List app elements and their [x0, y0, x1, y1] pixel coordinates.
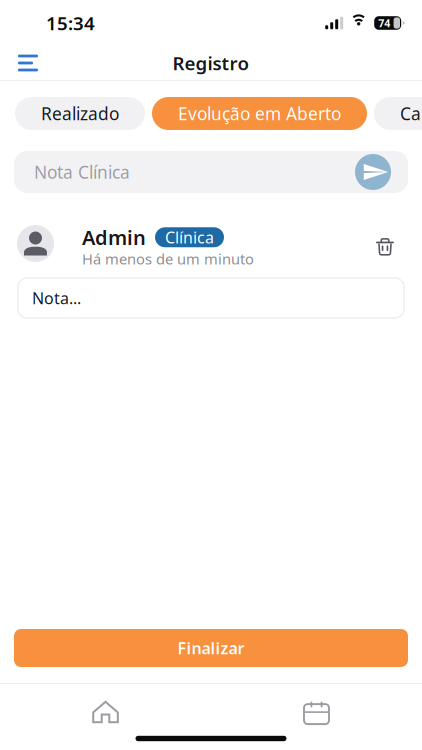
staticText: Há menos de um minuto: [82, 249, 254, 268]
button[interactable]: Agenda: [211, 684, 422, 727]
button[interactable]: Evolução em Aberto: [152, 97, 367, 130]
staticText: Nota Clínica: [34, 160, 130, 183]
staticText: 74: [378, 16, 390, 30]
button[interactable]: Excluir: [376, 236, 394, 253]
staticText: Realizado: [41, 102, 119, 125]
button[interactable]: Finalizar: [14, 629, 408, 667]
staticText: Nota...: [32, 287, 81, 309]
staticText: Clínica: [165, 227, 214, 248]
button[interactable]: Enviar: [355, 154, 391, 190]
button[interactable]: Menu: [0, 46, 52, 80]
staticText: Cancelado: [400, 102, 422, 125]
staticText: Evolução em Aberto: [178, 102, 341, 125]
staticText: 15:34: [46, 11, 95, 35]
staticText: Registro: [172, 51, 249, 75]
staticText: Admin: [82, 224, 146, 251]
button[interactable]: Cancelado: [374, 97, 422, 130]
button[interactable]: Início: [0, 684, 211, 727]
staticText: Finalizar: [177, 637, 244, 659]
button[interactable]: Realizado: [15, 97, 145, 130]
